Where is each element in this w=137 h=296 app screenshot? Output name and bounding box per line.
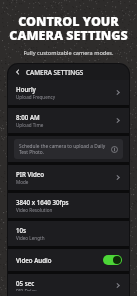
staticText: CAMERA SETTINGS xyxy=(26,68,84,77)
button[interactable]: Video Audio xyxy=(8,249,129,271)
other: Video Audio on xyxy=(103,255,122,265)
staticText: 10s xyxy=(16,226,27,234)
staticText: Schedule the camera to upload a Daily Te… xyxy=(19,143,108,155)
staticText: Video Length xyxy=(16,235,45,241)
staticText: Mode xyxy=(16,179,29,185)
staticText: 8:00 AM xyxy=(16,113,40,121)
staticText: PIR Video xyxy=(16,170,45,178)
staticText: Video Resolution xyxy=(16,207,53,213)
button[interactable]: Schedule the camera to upload a Daily Te… xyxy=(14,139,123,159)
staticText: Hourly xyxy=(16,85,36,93)
staticText: PIR Delay xyxy=(16,288,37,291)
staticText: 3840 x 1640 30fps xyxy=(16,198,69,206)
button[interactable]: 3840 x 1640 30fps xyxy=(8,193,129,218)
staticText: Upload Time xyxy=(16,122,44,128)
button[interactable]: 05 sec xyxy=(8,274,129,296)
button[interactable]: 10s xyxy=(8,221,129,246)
staticText: 05 sec xyxy=(16,279,35,287)
staticText: Fully customizable camera modes. xyxy=(0,49,137,57)
button[interactable]: PIR Video xyxy=(8,165,129,190)
button[interactable]: Back xyxy=(13,67,23,77)
button[interactable]: Hourly xyxy=(8,80,129,105)
staticText: Upload Frequency xyxy=(16,94,56,100)
button[interactable]: 8:00 AM xyxy=(8,108,129,133)
staticText: Video Audio xyxy=(16,256,103,264)
staticText: CONTROL YOUR CAMERA SETTINGS xyxy=(0,13,137,44)
